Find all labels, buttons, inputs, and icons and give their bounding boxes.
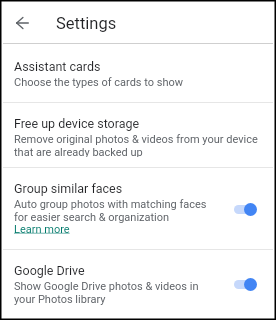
- staticText: Free up device storage: [14, 116, 140, 131]
- staticText: Google Drive: [14, 263, 85, 278]
- staticText: Choose the types of cards to show: [14, 76, 184, 89]
- staticText: Settings: [56, 14, 117, 33]
- button[interactable]: Toggle: [234, 277, 260, 291]
- staticText: Group similar faces: [14, 181, 123, 196]
- staticText: Remove original photos & videos from you…: [14, 133, 258, 157]
- staticText: Assistant cards: [14, 59, 101, 74]
- button[interactable]: Group similar faces: [3, 168, 273, 249]
- button[interactable]: Toggle: [234, 202, 260, 216]
- button[interactable]: Free up device storage: [3, 103, 273, 167]
- button[interactable]: Back: [3, 4, 42, 42]
- button[interactable]: Assistant cards: [3, 44, 273, 102]
- staticText: Show Google Drive photos & videos in you…: [14, 280, 199, 305]
- button[interactable]: Auto group photos with matching faces fo…: [14, 198, 207, 235]
- button[interactable]: Google Drive: [3, 250, 273, 315]
